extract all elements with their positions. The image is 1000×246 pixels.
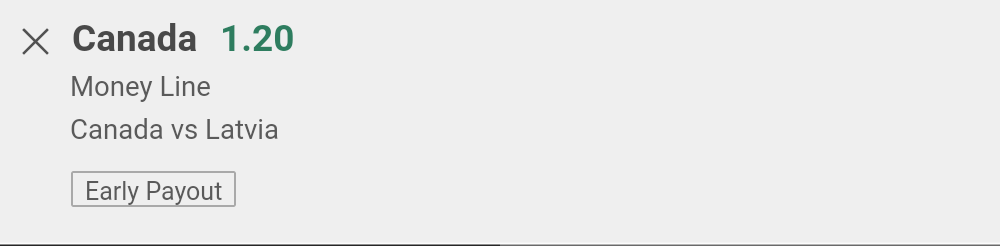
- staticText: Canada: [72, 17, 198, 60]
- staticText: 1.20: [220, 17, 295, 60]
- button[interactable]: Remove selection: [12, 18, 58, 64]
- staticText: Early Payout: [85, 177, 223, 206]
- staticText: Money Line: [70, 70, 211, 102]
- staticText: Canada vs Latvia: [70, 113, 280, 145]
- button[interactable]: Early Payout: [71, 171, 236, 207]
